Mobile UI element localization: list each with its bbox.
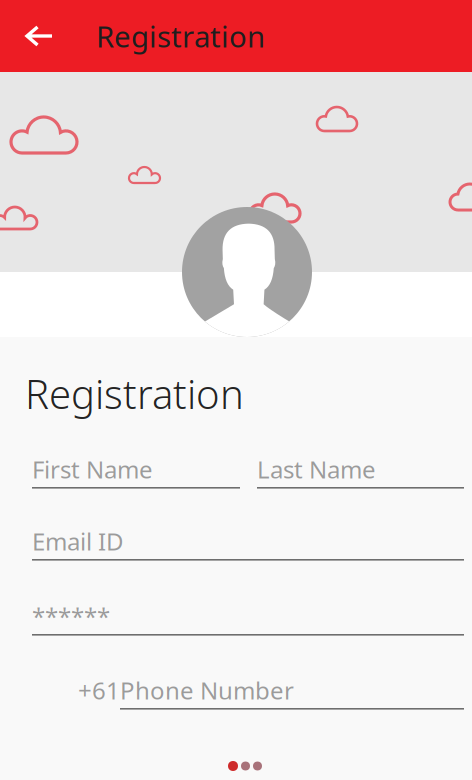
button[interactable]: ****** xyxy=(32,608,464,636)
button[interactable]: Phone Number xyxy=(120,682,464,710)
button[interactable]: Last Name xyxy=(257,461,464,489)
staticText: ****** xyxy=(32,600,110,632)
staticText: Email ID xyxy=(32,525,124,557)
staticText: +61 xyxy=(78,674,120,706)
button[interactable]: First Name xyxy=(32,461,240,489)
staticText: Registration xyxy=(96,16,265,55)
staticText: Phone Number xyxy=(120,674,294,706)
staticText: First Name xyxy=(32,453,153,485)
staticText: Last Name xyxy=(257,453,376,485)
staticText: Registration xyxy=(25,367,244,420)
button[interactable]: Email ID xyxy=(32,533,464,561)
button[interactable]: Back xyxy=(0,0,75,72)
